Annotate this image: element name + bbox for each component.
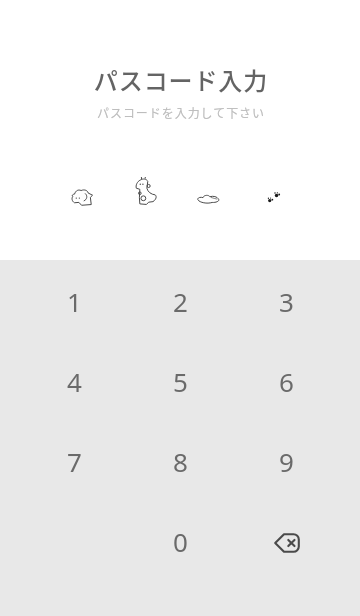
button[interactable]: 4 [22,341,127,421]
staticText: 3 [279,284,294,319]
button[interactable]: 2 [127,261,233,341]
other: Backspace [274,533,300,553]
button[interactable]: 0 [127,501,233,581]
button[interactable]: 6 [233,341,339,421]
staticText: 8 [173,444,188,479]
button[interactable]: Delete [233,501,339,581]
staticText: 1 [67,284,82,319]
staticText: 5 [173,364,188,399]
staticText: 2 [173,284,188,319]
staticText: 4 [67,364,82,399]
staticText: 0 [173,524,188,559]
button[interactable]: 1 [22,261,127,341]
button[interactable]: 3 [233,261,339,341]
button[interactable]: 5 [127,341,233,421]
staticText: パスコードを入力して下さい [1,104,360,121]
staticText: 9 [279,444,294,479]
button[interactable]: 7 [22,421,127,501]
staticText: パスコード入力 [1,62,360,97]
button[interactable]: 8 [127,421,233,501]
staticText: 7 [67,444,82,479]
button[interactable]: 9 [233,421,339,501]
staticText: 6 [279,364,294,399]
